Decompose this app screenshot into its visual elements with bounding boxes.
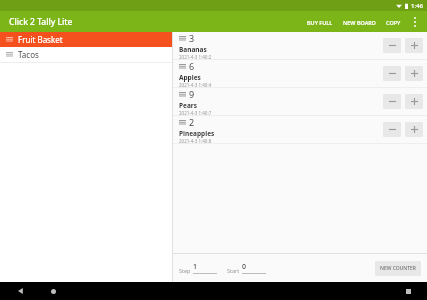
button[interactable]: 6 bbox=[173, 60, 427, 87]
button[interactable]: COPY bbox=[381, 15, 406, 30]
button[interactable]: 1 bbox=[193, 262, 217, 274]
button[interactable]: Increment bbox=[405, 122, 423, 137]
button[interactable]: 3 bbox=[173, 32, 427, 59]
button[interactable]: Back bbox=[14, 284, 28, 298]
staticText: 2021-4-3 1:40:8 bbox=[179, 138, 212, 143]
staticText: 0 bbox=[242, 262, 247, 272]
staticText: 2021-4-3 1:40:4 bbox=[179, 82, 212, 87]
button[interactable]: 2 bbox=[173, 116, 427, 143]
staticText: NEW BOARD bbox=[343, 19, 376, 26]
button[interactable]: Recents bbox=[401, 284, 415, 298]
staticText: 6 bbox=[189, 60, 195, 72]
button[interactable]: Home bbox=[46, 284, 60, 298]
button[interactable]: More options bbox=[406, 13, 424, 31]
button[interactable]: Increment bbox=[405, 94, 423, 109]
staticText: 2021-4-3 1:40:7 bbox=[179, 110, 212, 115]
button[interactable]: Tacos bbox=[0, 47, 172, 62]
staticText: 2021-4-3 1:40:2 bbox=[179, 54, 212, 59]
button[interactable]: Decrement bbox=[383, 38, 401, 53]
button[interactable]: Increment bbox=[405, 38, 423, 53]
staticText: BUY FULL bbox=[307, 19, 333, 26]
button[interactable]: Fruit Basket bbox=[0, 32, 172, 47]
button[interactable]: NEW COUNTER bbox=[375, 261, 421, 276]
button[interactable]: Decrement bbox=[383, 94, 401, 109]
button[interactable]: 9 bbox=[173, 88, 427, 115]
staticText: 9 bbox=[189, 88, 195, 100]
button[interactable]: BUY FULL bbox=[302, 15, 338, 30]
staticText: 2 bbox=[189, 116, 195, 128]
button[interactable]: 0 bbox=[242, 262, 266, 274]
staticText: 1 bbox=[193, 262, 198, 272]
staticText: Pears bbox=[179, 101, 197, 110]
staticText: Start bbox=[227, 267, 240, 274]
staticText: Click 2 Tally Lite bbox=[9, 16, 73, 28]
staticText: NEW COUNTER bbox=[380, 265, 416, 272]
staticText: Apples bbox=[179, 73, 201, 82]
button[interactable]: NEW BOARD bbox=[338, 15, 381, 30]
staticText: Step bbox=[179, 267, 191, 274]
staticText: 1:46 bbox=[411, 2, 423, 10]
staticText: 3 bbox=[189, 32, 195, 44]
button[interactable]: Increment bbox=[405, 66, 423, 81]
button[interactable]: Decrement bbox=[383, 122, 401, 137]
staticText: COPY bbox=[386, 19, 401, 26]
staticText: Pineapples bbox=[179, 129, 215, 138]
staticText: Tacos bbox=[18, 49, 39, 60]
staticText: Bananas bbox=[179, 45, 207, 54]
button[interactable]: Decrement bbox=[383, 66, 401, 81]
staticText: Fruit Basket bbox=[18, 34, 63, 45]
